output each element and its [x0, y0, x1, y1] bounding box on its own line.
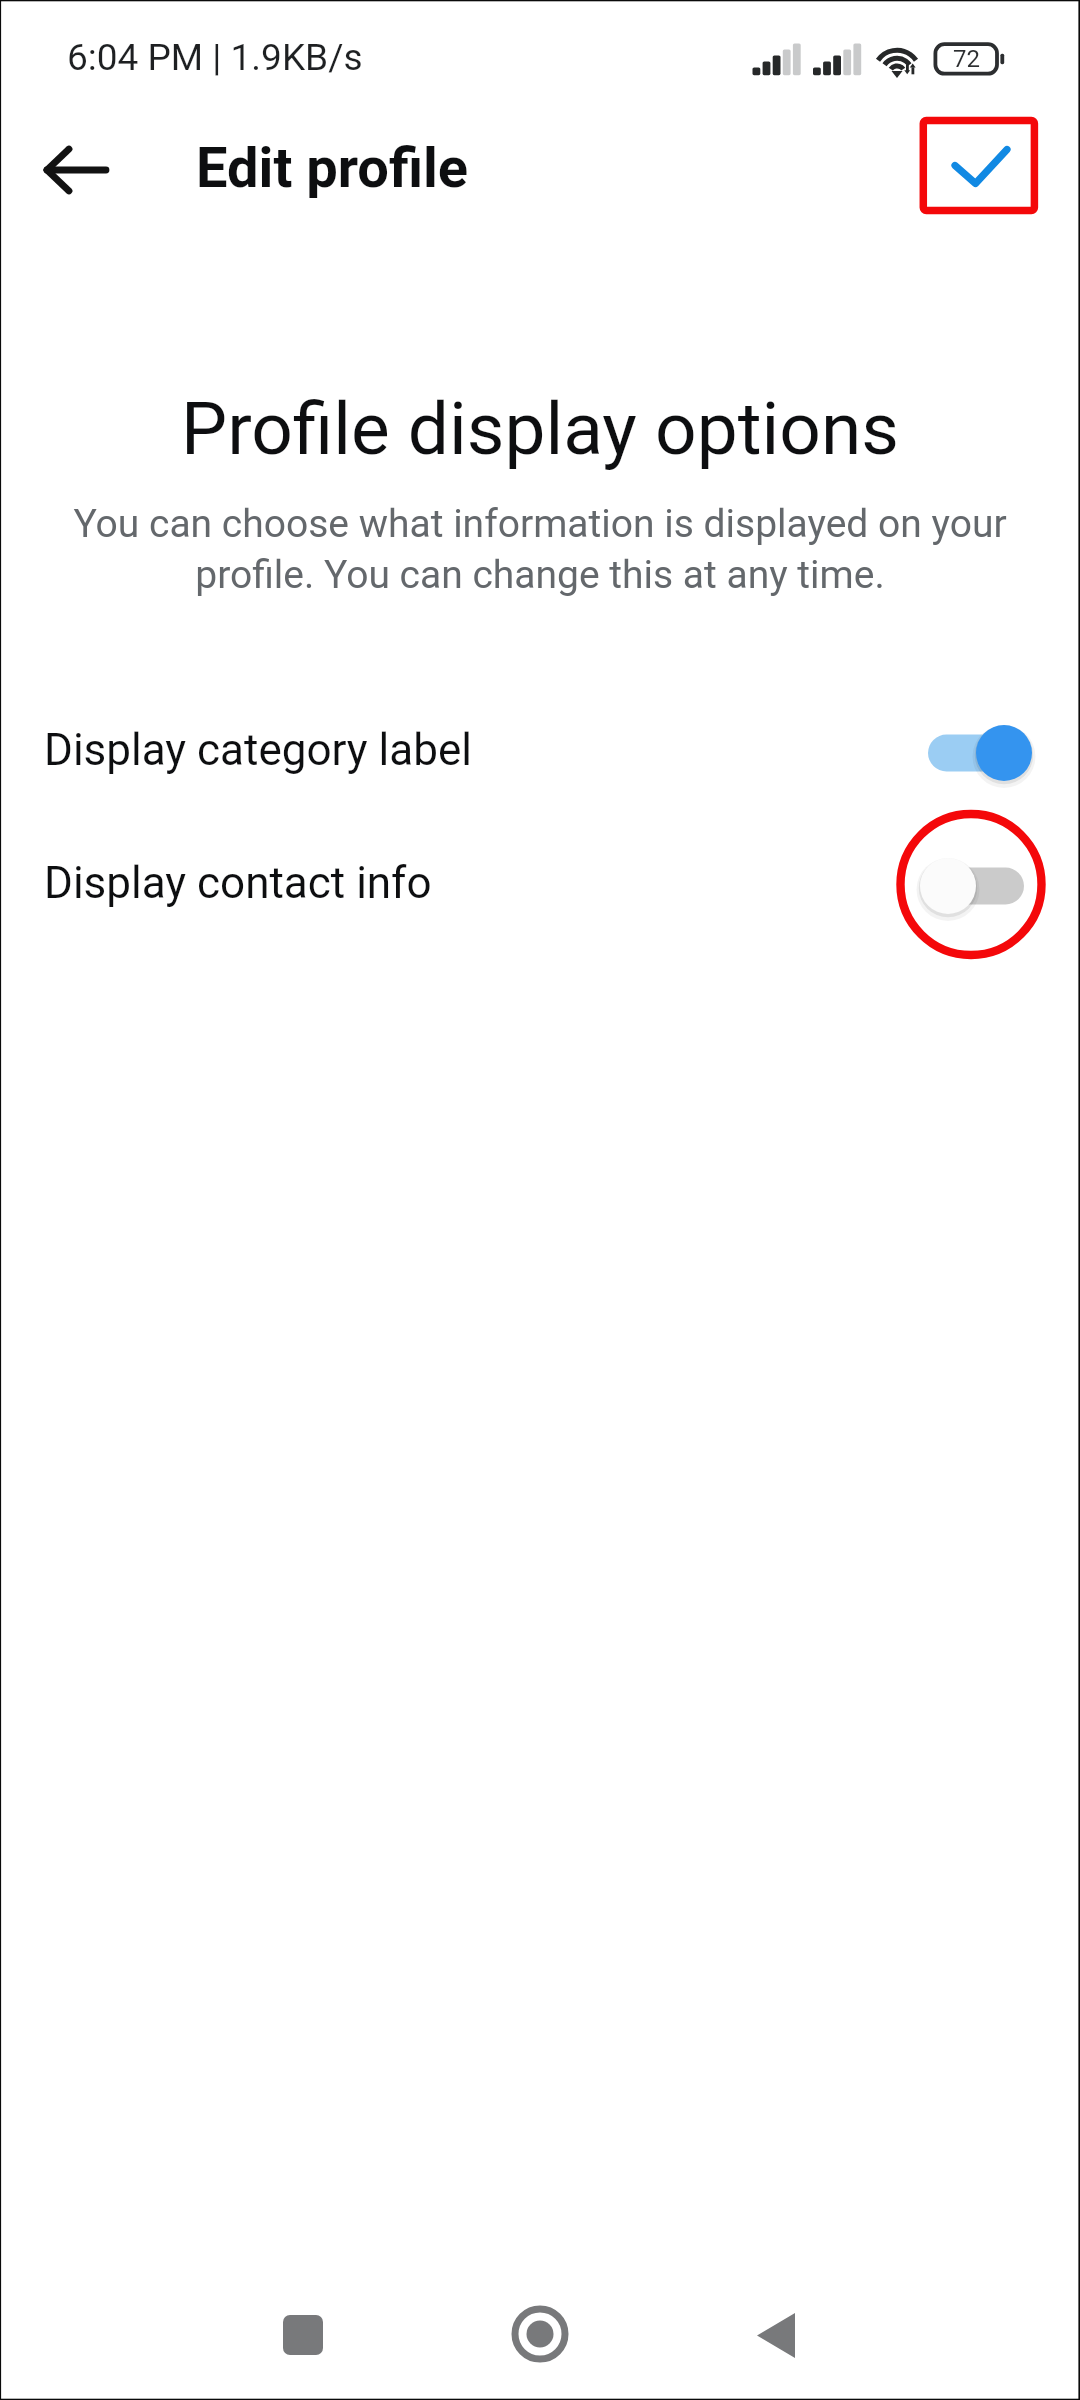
staticText: You can choose what information is displ…: [40, 501, 1040, 597]
button[interactable]: Display contact info: [0, 838, 1080, 934]
button[interactable]: Home: [460, 2254, 620, 2400]
button[interactable]: Recent apps: [223, 2255, 383, 2400]
staticText: Profile display options: [0, 386, 1080, 472]
button[interactable]: Display contact info, off: [912, 852, 1044, 920]
staticText: Edit profile: [196, 135, 469, 201]
staticText: 72: [953, 45, 980, 73]
staticText: 6:04 PM | 1.9KB/s: [67, 36, 363, 79]
staticText: Display category label: [44, 724, 472, 776]
button[interactable]: Display category label, on: [912, 719, 1044, 787]
button[interactable]: Display category label: [0, 705, 1080, 801]
button[interactable]: Navigate up: [14, 118, 138, 222]
staticText: Display contact info: [44, 857, 432, 909]
button[interactable]: Save: [921, 117, 1038, 214]
button[interactable]: Back: [696, 2255, 856, 2400]
